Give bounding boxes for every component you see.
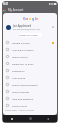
staticText: Privacy Policy • Terms of Service [5,109,35,112]
staticText: Search history [12,55,28,58]
button[interactable]: Search history [3,53,57,60]
staticText: Manage your Google Account [19,34,42,37]
button[interactable]: Your data in Search [3,46,57,53]
staticText: g [32,16,35,21]
button[interactable]: Close [50,24,55,29]
button[interactable]: SafeSearch [3,67,57,74]
button[interactable]: Search personalisation [3,81,57,88]
staticText: o [29,16,32,21]
button[interactable]: Privacy Policy [3,102,57,109]
staticText: G [23,16,26,21]
staticText: Help and feedback [12,97,33,100]
button[interactable]: Home [21,115,39,122]
staticText: Your profile [12,76,26,79]
staticText: e [36,16,39,21]
staticText: joe.appleseed@gmail.com [13,28,41,31]
staticText: Delete last 15 mins [12,62,34,65]
staticText: 9:41 [3,2,9,6]
staticText: l [35,16,36,21]
staticText: Google Account [12,41,30,44]
staticText: My Account [8,8,24,12]
button[interactable]: Search settings [3,88,57,95]
button[interactable]: Joe Appleseed [6,23,55,31]
staticText: o [26,16,29,21]
button[interactable]: Help and feedback [3,95,57,102]
button[interactable]: Delete last 15 mins [3,60,57,67]
staticText: Your data in Search [12,48,34,51]
staticText: Search settings [12,90,30,93]
staticText: SafeSearch [12,69,25,72]
button[interactable]: Back [39,115,57,122]
button[interactable]: Manage your Google Account [19,33,42,37]
button[interactable]: Google Account [3,39,57,46]
staticText: Search personalisation [12,83,38,86]
button[interactable]: Recents [3,115,21,122]
button[interactable]: Your profile [3,74,57,81]
staticText: Privacy Policy [12,104,28,107]
staticText: Joe Appleseed [13,24,32,28]
